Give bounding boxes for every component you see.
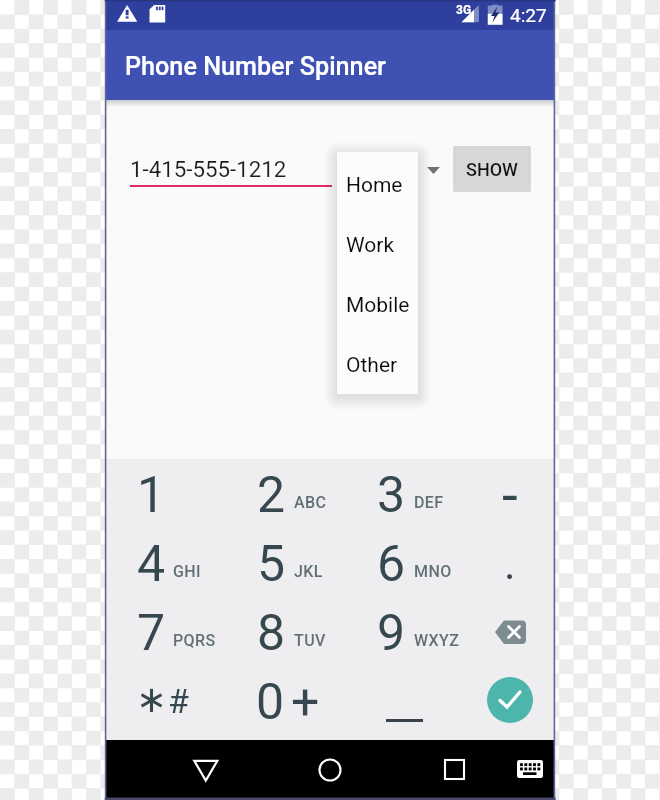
staticText: ABC — [294, 493, 327, 512]
staticText: 4:27 — [510, 4, 547, 26]
button[interactable]: ∗ — [118, 673, 236, 743]
button[interactable]: 1 — [119, 466, 237, 536]
button[interactable]: Space — [358, 673, 476, 743]
button[interactable]: 3 — [359, 466, 477, 536]
staticText: PQRS — [173, 631, 216, 650]
staticText: 1 — [137, 466, 166, 525]
staticText: DEF — [414, 493, 444, 512]
staticText: 0 — [256, 673, 285, 732]
button[interactable]: 8 — [239, 604, 357, 674]
staticText: 6 — [377, 535, 406, 594]
button[interactable]: 7 — [119, 604, 237, 674]
staticText: Home — [346, 173, 403, 198]
staticText: 5 — [257, 535, 286, 594]
staticText: 1-415-555-1212 — [130, 156, 287, 182]
button[interactable]: Backspace — [474, 597, 546, 667]
button[interactable]: Recents — [437, 752, 473, 788]
button[interactable]: 5 — [239, 535, 357, 605]
staticText: JKL — [294, 562, 323, 581]
button[interactable]: Keyboard — [513, 753, 547, 785]
staticText: ∗ — [136, 678, 168, 721]
staticText: - — [502, 462, 518, 529]
button[interactable]: SHOW — [453, 146, 531, 192]
staticText: Phone Number Spinner — [125, 52, 387, 82]
button[interactable]: 0 — [238, 673, 356, 743]
staticText: 4 — [137, 535, 166, 594]
staticText: 3G — [456, 3, 472, 17]
button[interactable]: Back — [187, 750, 225, 788]
staticText: WXYZ — [414, 631, 460, 650]
staticText: GHI — [173, 562, 201, 581]
staticText: 9 — [377, 604, 406, 663]
staticText: # — [168, 681, 189, 721]
button[interactable]: 6 — [359, 535, 477, 605]
button[interactable]: 9 — [359, 604, 477, 674]
staticText: 3 — [377, 466, 406, 525]
staticText: 8 — [257, 604, 286, 663]
button[interactable]: Phone Number Spinner — [106, 30, 554, 100]
staticText: Other — [346, 353, 398, 378]
button[interactable]: Home — [337, 155, 418, 215]
button[interactable]: Home — [312, 752, 348, 788]
staticText: Mobile — [346, 293, 410, 318]
staticText: Work — [346, 233, 395, 258]
button[interactable]: 2 — [239, 466, 357, 536]
button[interactable]: Confirm — [487, 677, 533, 723]
staticText: 2 — [257, 466, 286, 525]
button[interactable]: . — [482, 529, 538, 599]
staticText: SHOW — [466, 159, 518, 180]
staticText: TUV — [294, 631, 326, 650]
staticText: MNO — [414, 562, 452, 581]
staticText: 7 — [137, 604, 166, 663]
button[interactable]: Mobile — [337, 275, 418, 335]
button[interactable]: Other — [337, 335, 418, 395]
staticText: . — [504, 538, 516, 590]
staticText: + — [291, 673, 320, 732]
button[interactable]: 4 — [119, 535, 237, 605]
button[interactable]: - — [482, 460, 538, 530]
button[interactable]: Work — [337, 215, 418, 275]
